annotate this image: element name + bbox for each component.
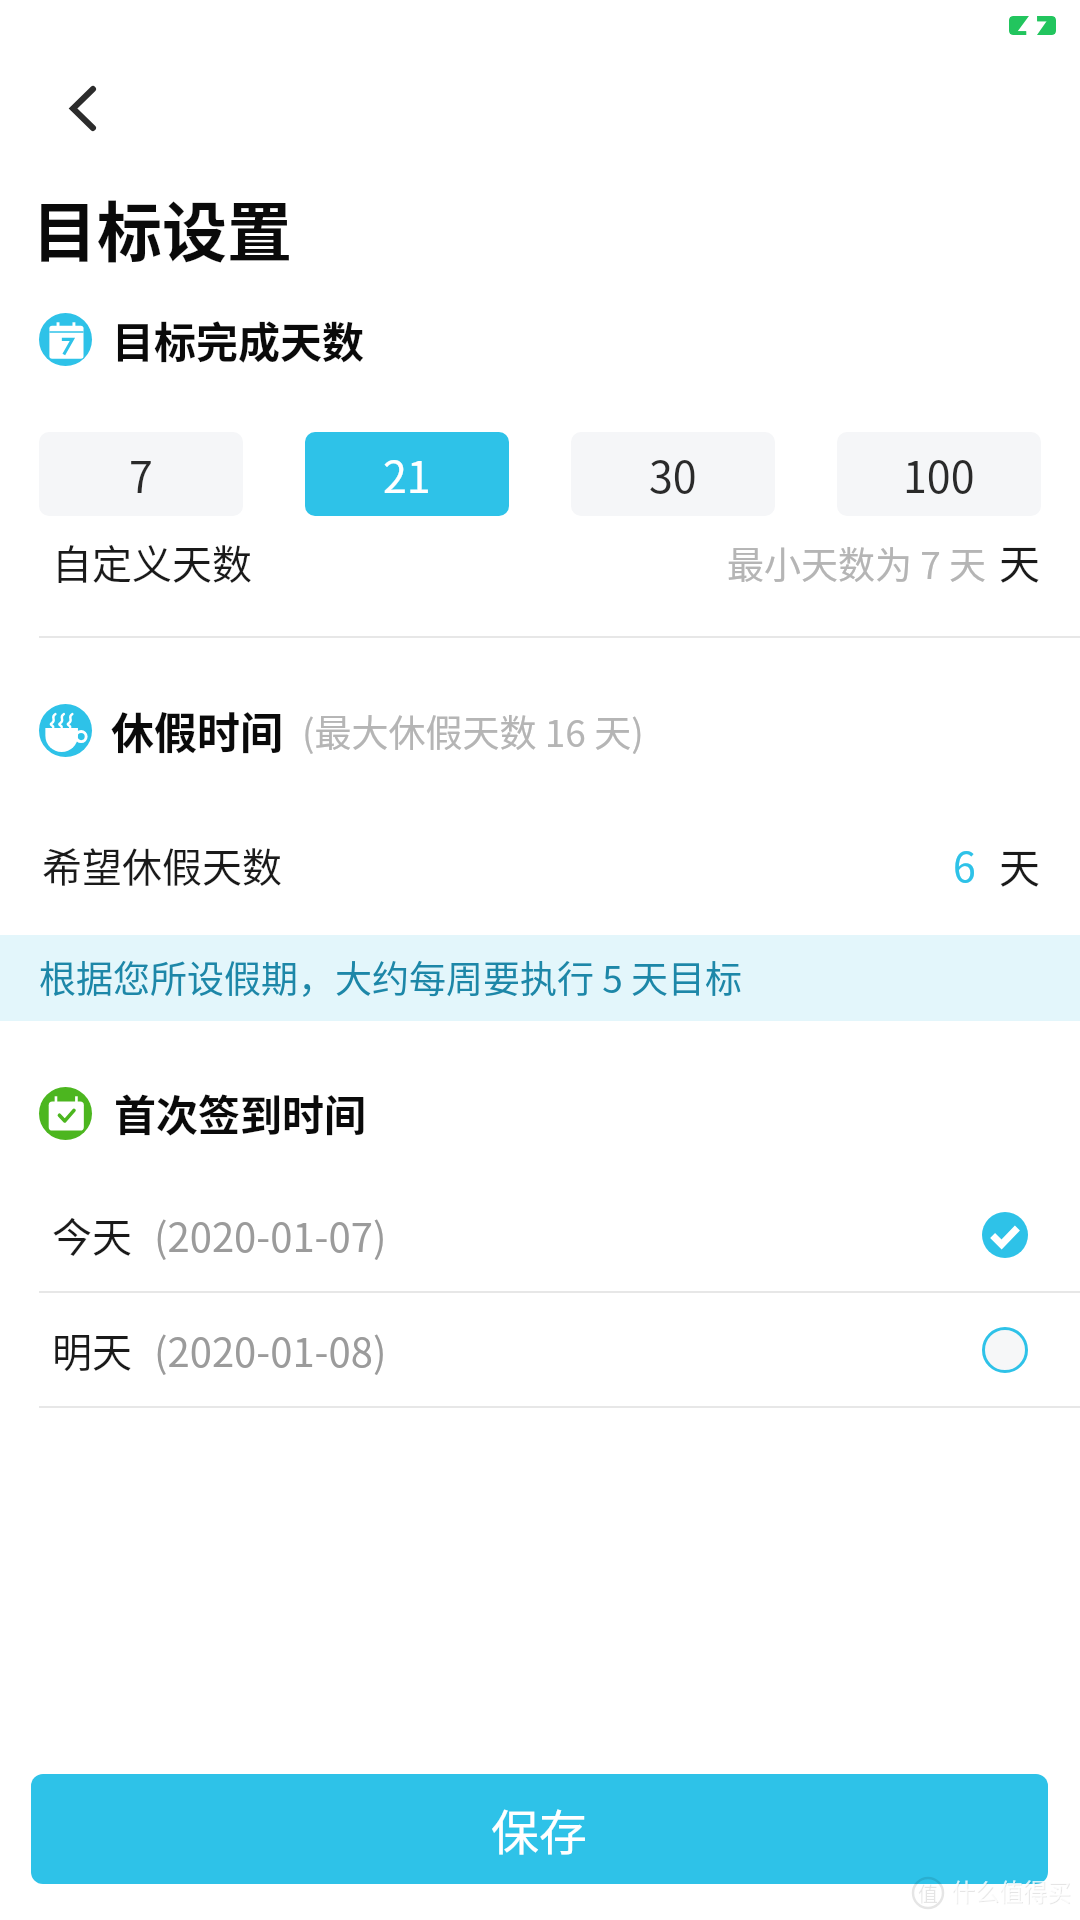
staticText: 最小天数为 7 天 [727,536,987,590]
button[interactable]: 100 [837,432,1041,516]
staticText: 目标完成天数 [112,309,365,370]
staticText: 明天 [52,1321,132,1379]
staticText: 7 [129,443,153,505]
staticText: (2020-01-07) [154,1206,387,1264]
staticText: (最大休假天数 16 天) [302,704,644,758]
staticText: 首次签到时间 [114,1082,367,1143]
staticText: 保存 [491,1794,588,1864]
button[interactable]: 今天 [0,1178,1080,1292]
staticText: 6 [953,834,976,893]
staticText: 休假时间 [111,699,283,761]
button[interactable] [0,520,1080,612]
staticText: 希望休假天数 [42,836,282,894]
staticText: 天 [999,531,1040,590]
button[interactable]: 明天 [0,1293,1080,1407]
button[interactable]: Back [38,64,126,152]
staticText: 今天 [52,1206,132,1264]
staticText: 什么值得买 [952,1874,1072,1909]
staticText: 100 [903,443,975,505]
staticText: 30 [649,443,697,505]
button[interactable]: 30 [571,432,775,516]
staticText: 根据您所设假期，大约每周要执行 5 天目标 [39,950,743,1004]
staticText: 天 [999,835,1040,894]
staticText: 目标设置 [32,181,293,275]
button[interactable]: 7 [39,432,243,516]
button[interactable]: 21 [305,432,509,516]
staticText: 自定义天数 [52,533,252,591]
button[interactable]: 保存 [31,1774,1048,1884]
staticText: 21 [383,443,431,505]
staticText: 什么值得买 [951,1873,1071,1908]
button[interactable] [0,812,1080,922]
staticText: 值 [918,1879,938,1908]
staticText: (2020-01-08) [154,1321,387,1379]
